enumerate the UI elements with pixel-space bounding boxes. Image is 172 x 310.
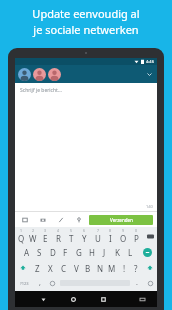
staticText: je sociale netwerken	[33, 22, 139, 37]
staticText: Schrijf je bericht...	[20, 87, 62, 94]
staticText: Verzenden	[110, 217, 133, 223]
staticText: B	[85, 263, 91, 274]
button[interactable]: Emoji	[143, 276, 157, 290]
button[interactable]: B	[82, 260, 94, 276]
button[interactable]: Camera	[37, 214, 48, 225]
staticText: E	[43, 233, 48, 244]
button[interactable]: M	[106, 260, 118, 276]
staticText: S	[37, 247, 42, 258]
button[interactable]: .	[131, 276, 143, 290]
button[interactable]: C	[57, 260, 70, 276]
button[interactable]: Account	[48, 68, 61, 81]
staticText: C	[61, 263, 67, 274]
button[interactable]: Verzenden	[89, 215, 153, 225]
staticText: Update eenvoudig al	[32, 6, 140, 21]
staticText: J	[103, 247, 106, 258]
button[interactable]: Schrijf je bericht...	[15, 83, 157, 211]
staticText: F	[63, 247, 68, 258]
button[interactable]: 2	[27, 228, 39, 244]
staticText: ?123	[20, 281, 29, 286]
staticText: !	[123, 263, 126, 274]
button[interactable]: ?123	[15, 276, 34, 290]
button[interactable]: F	[59, 244, 72, 260]
button[interactable]: Z	[31, 260, 44, 276]
button[interactable]: 9	[117, 228, 130, 244]
button[interactable]: ?	[130, 260, 142, 276]
staticText: .	[136, 278, 138, 288]
button[interactable]: Back	[37, 293, 49, 305]
staticText: 1	[20, 228, 23, 233]
button[interactable]: 7	[91, 228, 104, 244]
staticText: 2	[32, 228, 35, 233]
button[interactable]: Shift	[15, 260, 31, 276]
staticText: K	[115, 247, 120, 258]
button[interactable]: Location	[73, 214, 84, 225]
button[interactable]: 6	[78, 228, 91, 244]
button[interactable]: 8	[104, 228, 117, 244]
button[interactable]: Recents	[97, 293, 109, 305]
staticText: M	[108, 263, 116, 274]
staticText: 7	[97, 228, 100, 233]
staticText: 9	[122, 228, 125, 233]
button[interactable]: !	[118, 260, 130, 276]
button[interactable]: Account	[18, 68, 31, 81]
staticText: V	[74, 263, 79, 274]
staticText: L	[128, 247, 133, 258]
button[interactable]: N	[94, 260, 106, 276]
button[interactable]: D	[46, 244, 59, 260]
button[interactable]: 5	[65, 228, 78, 244]
button[interactable]: ,	[34, 276, 46, 290]
staticText: T	[69, 233, 74, 244]
button[interactable]: Home	[67, 293, 79, 305]
staticText: N	[97, 263, 104, 274]
button[interactable]: Shift	[142, 260, 157, 276]
staticText: Q	[18, 233, 25, 244]
button[interactable]: L	[124, 244, 137, 260]
staticText: Y	[82, 233, 87, 244]
button[interactable]: K	[111, 244, 124, 260]
staticText: 3	[44, 228, 47, 233]
button[interactable]: X	[44, 260, 57, 276]
button[interactable]: H	[85, 244, 98, 260]
button[interactable]: 4	[52, 228, 65, 244]
button[interactable]: 1	[15, 228, 27, 244]
staticText: R	[56, 233, 61, 244]
staticText: 5	[70, 228, 73, 233]
staticText: 4:46	[146, 59, 154, 64]
button[interactable]: J	[98, 244, 111, 260]
staticText: 4	[57, 228, 60, 233]
button[interactable]: S	[33, 244, 46, 260]
staticText: ,	[39, 278, 41, 288]
staticText: G	[76, 247, 82, 258]
button[interactable]: Backspace	[143, 228, 157, 244]
button[interactable]: Gallery	[19, 214, 30, 225]
staticText: D	[50, 247, 56, 258]
staticText: H	[89, 247, 95, 258]
staticText: 6	[83, 228, 86, 233]
button[interactable]: A	[20, 244, 33, 260]
button[interactable]: Language	[46, 276, 59, 290]
staticText: O	[120, 233, 127, 244]
button[interactable]: 3	[39, 228, 52, 244]
staticText: 140	[146, 204, 153, 209]
staticText: Z	[35, 263, 40, 274]
staticText: U	[95, 233, 101, 244]
button[interactable]: Keyboard	[136, 293, 148, 305]
button[interactable]: Expand	[145, 70, 154, 79]
button[interactable]: V	[70, 260, 82, 276]
button[interactable]: Attach	[55, 214, 66, 225]
button[interactable]: G	[72, 244, 85, 260]
staticText: A	[24, 247, 30, 258]
staticText: I	[109, 233, 112, 244]
staticText: 8	[109, 228, 112, 233]
staticText: P	[134, 233, 139, 244]
button[interactable]: Enter	[137, 244, 157, 260]
staticText: W	[29, 233, 37, 244]
staticText: X	[48, 263, 53, 274]
staticText: 0	[135, 228, 138, 233]
button[interactable]: 0	[130, 228, 143, 244]
button[interactable]: Account	[33, 68, 46, 81]
staticText: ?	[134, 263, 138, 274]
